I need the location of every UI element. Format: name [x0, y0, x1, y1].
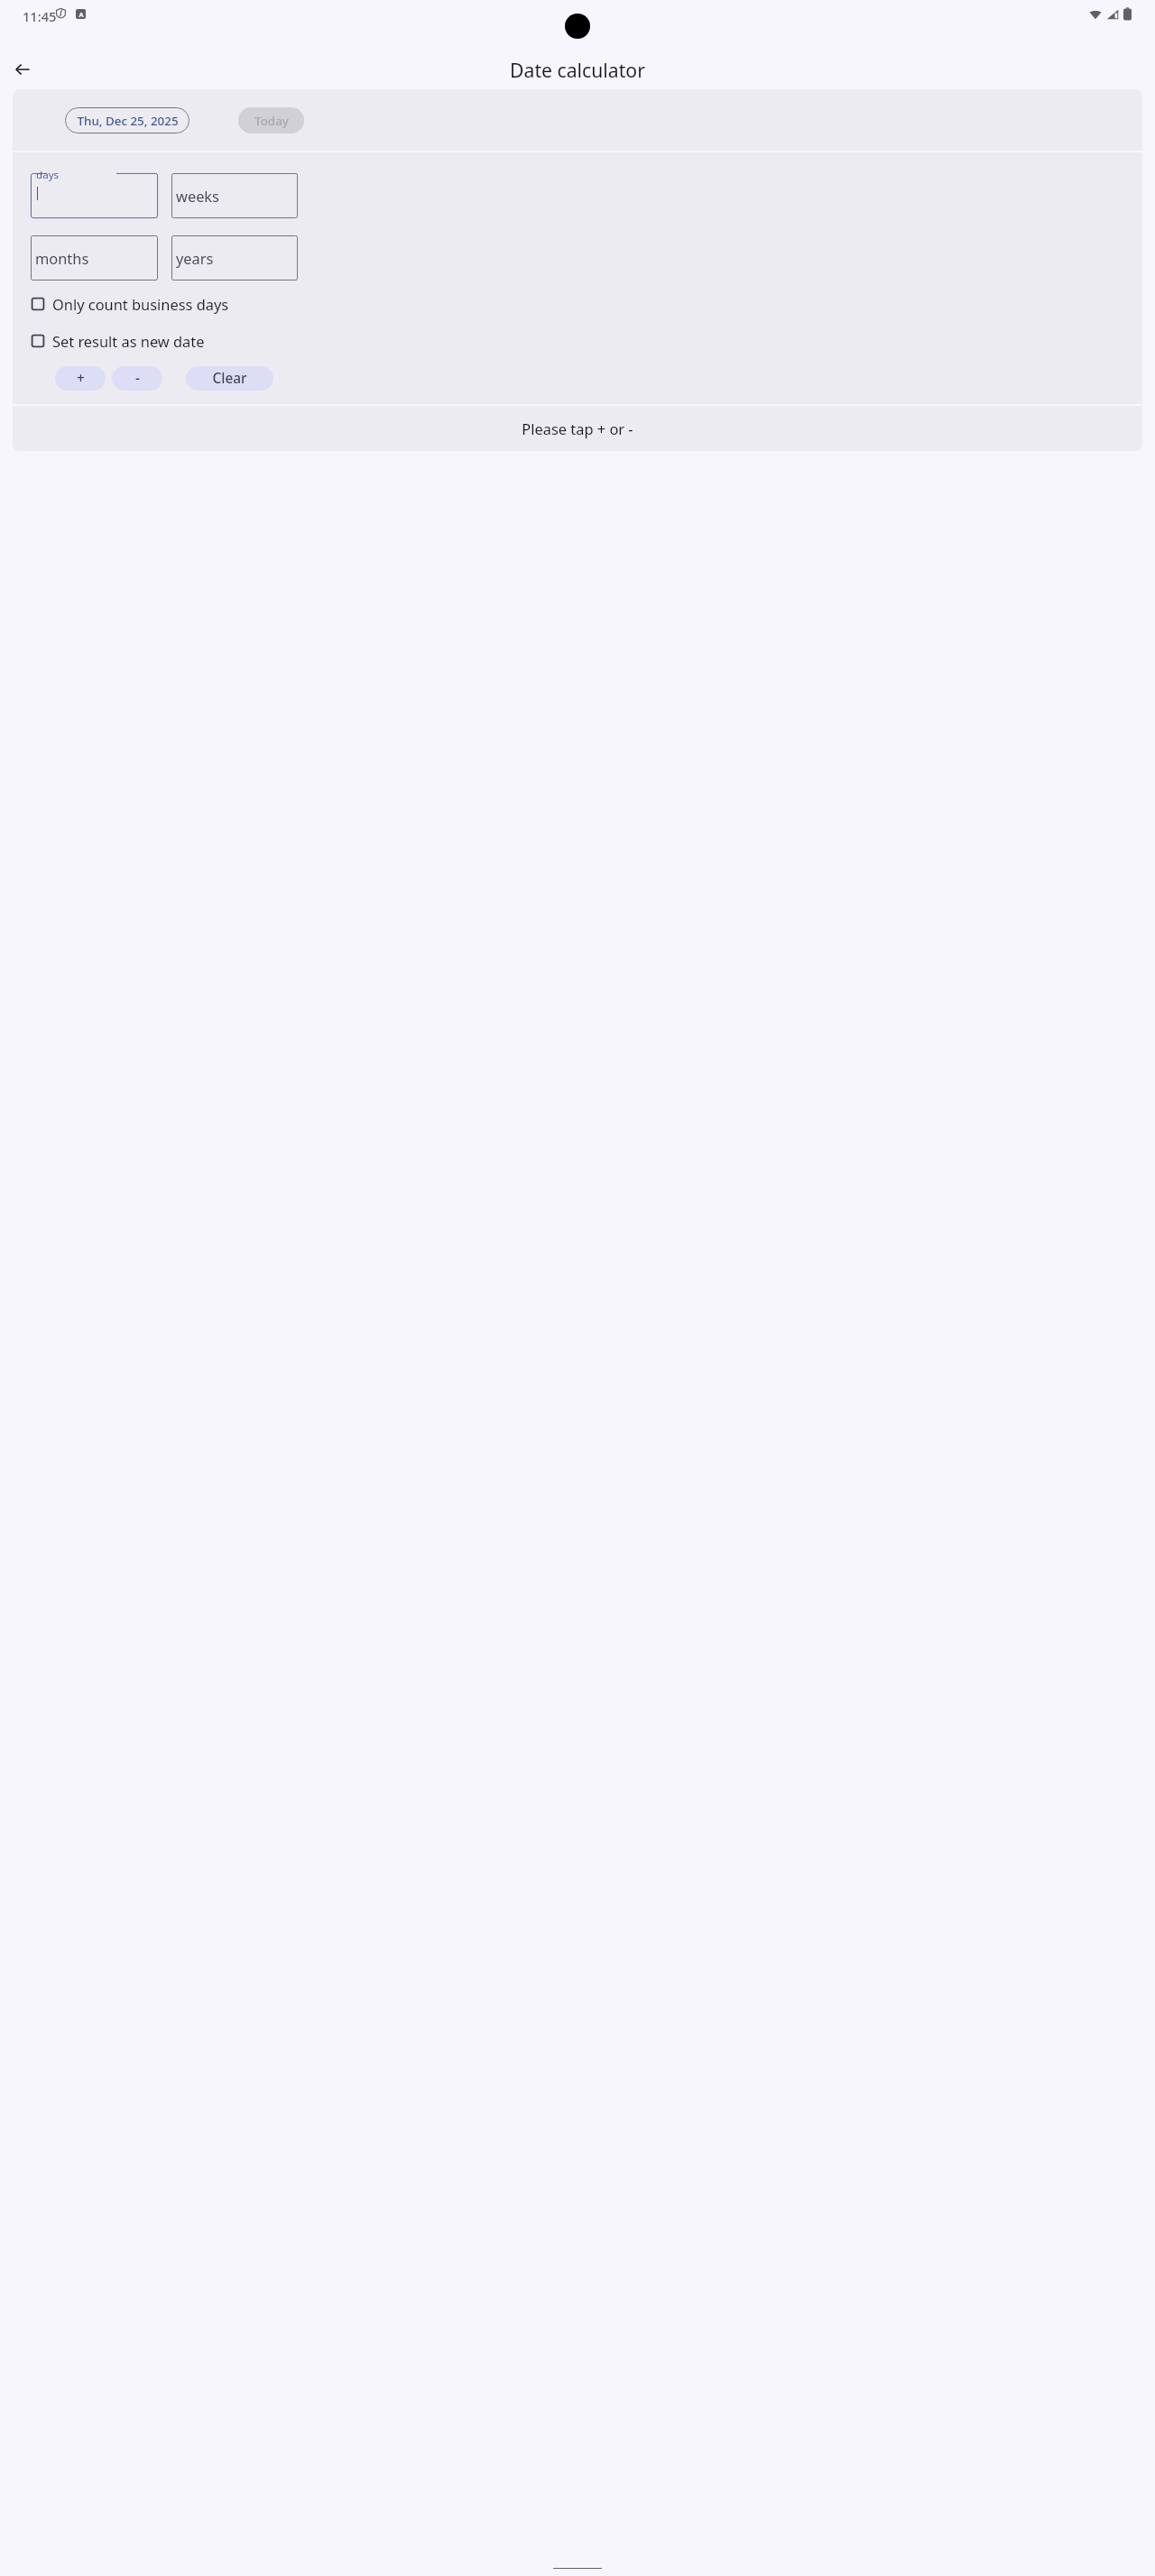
staticText: Today: [254, 113, 289, 129]
button[interactable]: -: [112, 366, 162, 391]
staticText: Clear: [212, 369, 247, 388]
staticText: days: [36, 168, 60, 182]
button[interactable]: Today: [238, 107, 304, 133]
staticText: weeks: [176, 186, 219, 206]
button[interactable]: years: [171, 235, 298, 281]
staticText: Please tap + or -: [522, 419, 633, 438]
staticText: Thu, Dec 25, 2025: [77, 113, 179, 129]
button[interactable]: months: [31, 235, 158, 281]
staticText: years: [176, 248, 214, 268]
staticText: 11:45: [23, 7, 57, 25]
staticText: +: [77, 369, 85, 388]
button[interactable]: Set result as new date: [31, 327, 205, 354]
staticText: A: [79, 10, 84, 19]
staticText: Only count business days: [52, 294, 229, 314]
button[interactable]: Only count business days: [31, 290, 229, 317]
button[interactable]: Back: [10, 57, 35, 82]
staticText: months: [35, 248, 89, 268]
button[interactable]: weeks: [171, 173, 298, 218]
button[interactable]: +: [55, 366, 106, 391]
staticText: -: [135, 369, 140, 388]
staticText: Set result as new date: [52, 331, 205, 351]
button[interactable]: Clear: [186, 366, 273, 391]
button[interactable]: days: [31, 173, 158, 218]
button[interactable]: Thu, Dec 25, 2025: [65, 107, 189, 133]
staticText: Date calculator: [510, 57, 645, 83]
